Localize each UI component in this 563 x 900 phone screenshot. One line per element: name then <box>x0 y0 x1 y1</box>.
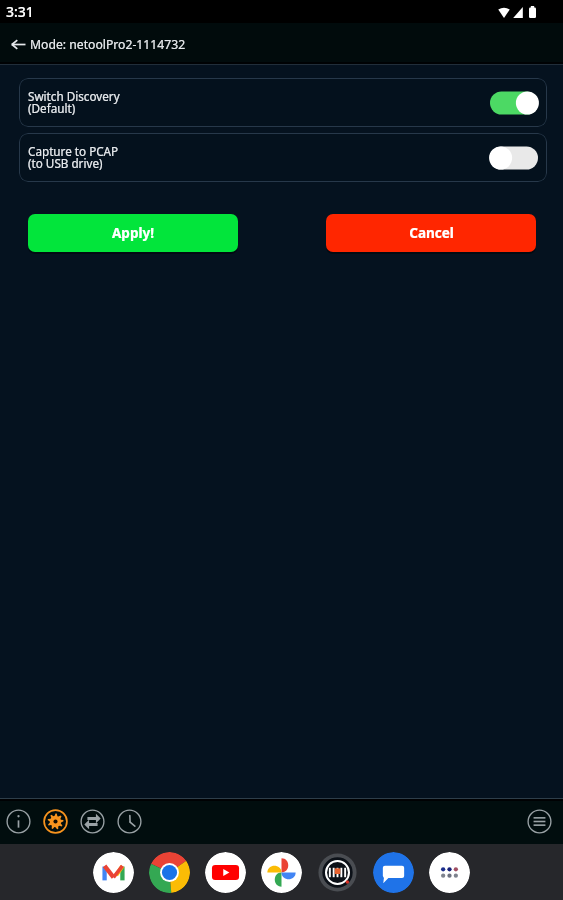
staticText: Cancel <box>409 224 454 242</box>
button[interactable]: Back <box>6 32 30 56</box>
button[interactable]: Capture to PCAP (to USB drive) <box>19 133 547 182</box>
button[interactable]: Switch Discovery (Default) <box>19 78 547 127</box>
button[interactable]: Gmail <box>93 852 134 893</box>
button[interactable]: All apps <box>429 852 470 893</box>
button[interactable]: History <box>111 803 148 840</box>
staticText: Capture to PCAP (to USB drive) <box>28 143 119 172</box>
button[interactable]: Cancel <box>326 214 536 252</box>
staticText: 3:31 <box>6 2 34 21</box>
button[interactable]: Photos <box>261 852 302 893</box>
button[interactable]: Camera <box>317 852 358 893</box>
staticText: Mode: netoolPro2-1114732 <box>30 36 186 53</box>
button[interactable]: Messages <box>373 852 414 893</box>
button[interactable]: Apply! <box>28 214 238 252</box>
button[interactable]: Transfer <box>74 803 111 840</box>
button[interactable] <box>490 91 538 115</box>
button[interactable]: Menu <box>522 804 556 838</box>
button[interactable] <box>490 146 538 170</box>
button[interactable]: Info <box>0 803 37 840</box>
button[interactable]: Settings <box>37 803 74 840</box>
button[interactable]: YouTube <box>205 852 246 893</box>
staticText: Switch Discovery (Default) <box>28 88 120 117</box>
button[interactable]: Chrome <box>149 852 190 893</box>
staticText: Apply! <box>112 224 154 242</box>
